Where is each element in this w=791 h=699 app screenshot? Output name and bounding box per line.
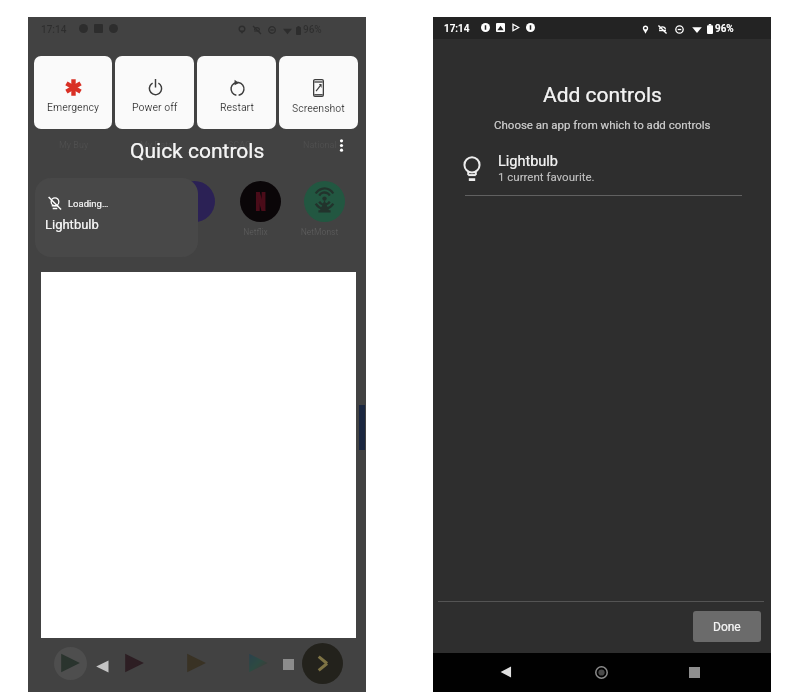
- staticText: 1 current favourite.: [498, 170, 595, 183]
- staticText: Lightbulb: [498, 153, 559, 170]
- staticText: My Buy: [59, 140, 89, 151]
- button[interactable]: Expand: [302, 643, 343, 684]
- button[interactable]: Emergency: [34, 56, 112, 129]
- staticText: Screenshot: [292, 102, 345, 114]
- staticText: Quick controls: [130, 139, 265, 164]
- staticText: Lightbulb: [45, 217, 99, 232]
- staticText: Choose an app from which to add controls: [494, 118, 711, 131]
- staticText: My Data: [140, 140, 173, 151]
- button[interactable]: Screenshot: [279, 56, 358, 129]
- staticText: National: [303, 140, 337, 151]
- button[interactable]: App shortcut: [57, 650, 83, 676]
- staticText: NetMonst…: [299, 227, 340, 237]
- button[interactable]: App shortcut: [183, 650, 209, 676]
- staticText: 96%: [303, 24, 322, 36]
- staticText: Power off: [132, 101, 178, 113]
- button[interactable]: Back: [95, 659, 110, 674]
- button[interactable]: Home: [592, 663, 610, 681]
- button[interactable]: Loading…: [35, 178, 198, 257]
- staticText: Netflix: [235, 227, 276, 237]
- staticText: Emergency: [47, 101, 99, 113]
- staticText: SCAC: [228, 140, 251, 151]
- staticText: Restart: [220, 101, 254, 113]
- staticText: 17:14: [444, 23, 470, 35]
- button[interactable]: Recents: [685, 663, 703, 681]
- button[interactable]: App shortcut: [121, 650, 147, 676]
- staticText: 96%: [715, 23, 734, 35]
- button[interactable]: Lightbulb: [433, 145, 771, 190]
- button[interactable]: More options: [331, 135, 351, 155]
- staticText: Loading…: [68, 198, 109, 209]
- staticText: Done: [713, 620, 741, 634]
- button[interactable]: Back: [497, 663, 515, 681]
- button[interactable]: Restart: [197, 56, 276, 129]
- button[interactable]: Power off: [115, 56, 194, 129]
- staticText: Add controls: [543, 83, 662, 108]
- staticText: 17:14: [41, 24, 67, 36]
- button[interactable]: Play Store: [245, 650, 271, 676]
- button[interactable]: Done: [693, 611, 761, 642]
